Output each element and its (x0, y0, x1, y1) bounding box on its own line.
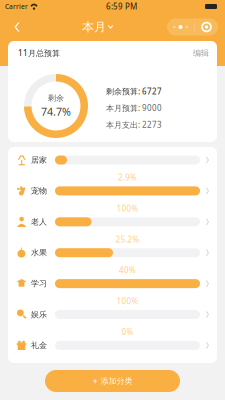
staticText: 学习 (31, 279, 47, 288)
staticText: 本月 (82, 20, 106, 34)
button[interactable]: 宠物 (8, 178, 217, 209)
staticText: 100% (116, 296, 138, 306)
staticText: 11月总预算 (18, 48, 60, 58)
button[interactable]: 礼金 (8, 332, 217, 363)
staticText: + (92, 375, 97, 387)
button[interactable]: 水果 (8, 240, 217, 271)
staticText: 25.2% (115, 234, 139, 245)
button[interactable]: 编辑 (193, 48, 209, 58)
staticText: 娱乐 (31, 310, 47, 319)
button[interactable]: 娱乐 (8, 301, 217, 332)
staticText: 2.9% (118, 172, 137, 183)
staticText: 40% (119, 265, 136, 275)
staticText: 本月支出: 2273 (106, 119, 162, 130)
button[interactable]: 老人 (8, 209, 217, 240)
staticText: 礼金 (31, 340, 47, 350)
button[interactable]: 学习 (8, 271, 217, 301)
button[interactable]: 本月 (82, 13, 113, 41)
button[interactable]: + (45, 370, 180, 392)
staticText: 添加分类 (100, 376, 132, 386)
staticText: 本月预算: 9000 (106, 103, 162, 113)
staticText: 0% (121, 327, 133, 337)
staticText: Carrier (5, 2, 28, 11)
staticText: 居家 (31, 155, 47, 165)
staticText: 水果 (31, 248, 47, 258)
staticText: 74.7% (41, 105, 71, 119)
staticText: 宠物 (31, 186, 47, 196)
button[interactable]: Back (6, 13, 28, 41)
staticText: 剩余 (48, 93, 64, 103)
button[interactable]: List view (167, 18, 194, 35)
staticText: 100% (116, 203, 138, 214)
button[interactable]: Chart view (195, 18, 218, 35)
staticText: 老人 (31, 217, 47, 227)
staticText: 剩余预算: 6727 (106, 86, 162, 97)
staticText: 编辑 (193, 48, 209, 58)
button[interactable]: 居家 (8, 147, 217, 178)
staticText: 6:59 PM (106, 1, 137, 12)
